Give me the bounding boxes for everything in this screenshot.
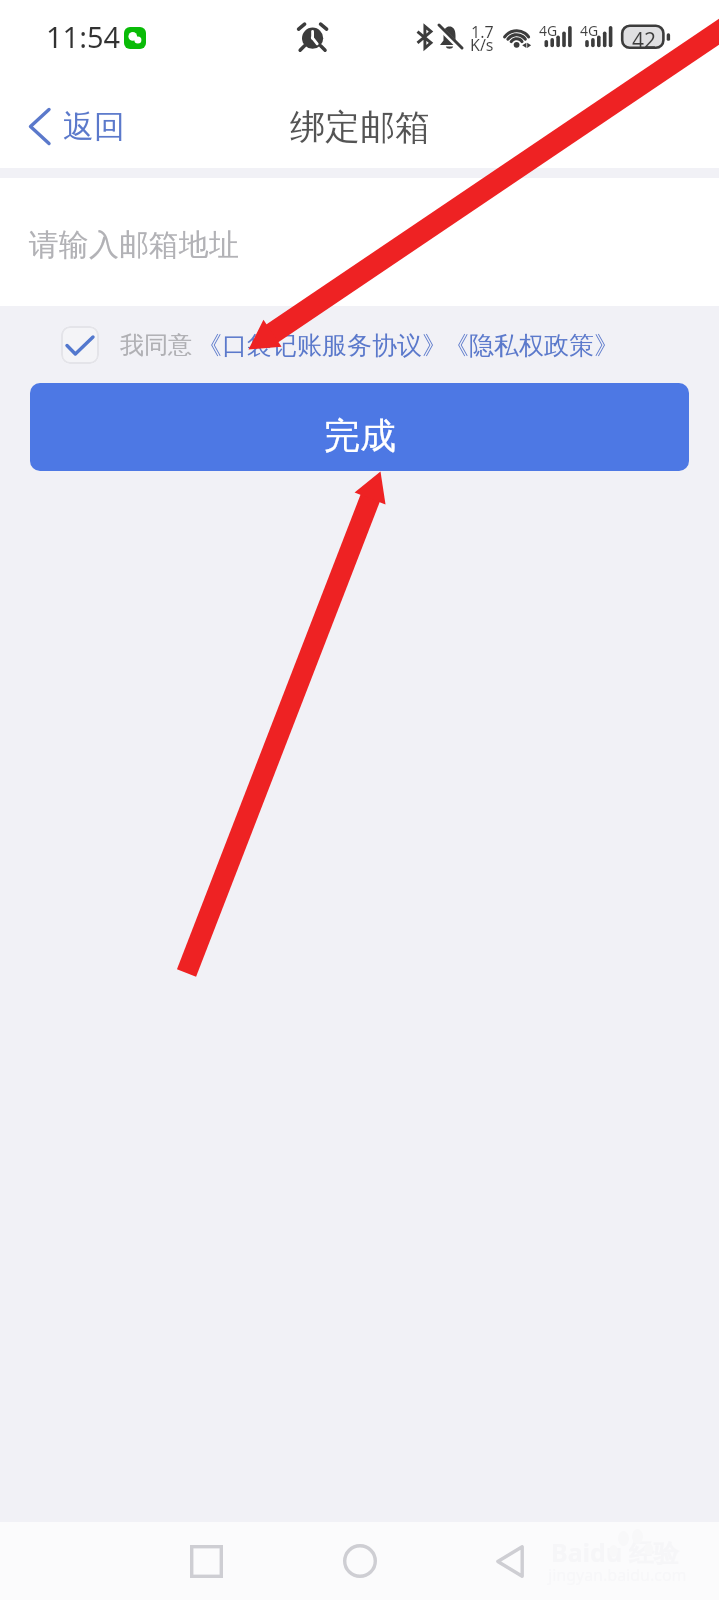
staticText: 1.7	[471, 21, 494, 43]
staticText: 4G	[539, 21, 558, 40]
button[interactable]: 完成	[30, 383, 689, 471]
button[interactable]: 《隐私权政策》	[444, 330, 619, 361]
button[interactable]: 《口袋记账服务协议》	[197, 330, 447, 361]
staticText: 完成	[324, 413, 396, 458]
staticText: 42	[632, 26, 657, 55]
staticText: 返回	[63, 107, 125, 146]
button[interactable]: 返回	[0, 78, 139, 168]
button[interactable]: Recent apps	[166, 1522, 246, 1600]
button[interactable]: Home	[320, 1522, 400, 1600]
button[interactable]: 请输入邮箱地址	[0, 178, 719, 306]
staticText: 请输入邮箱地址	[29, 226, 239, 264]
staticText: 我同意	[120, 330, 192, 360]
staticText: 4G	[580, 21, 599, 40]
staticText: 绑定邮箱	[290, 105, 430, 149]
button[interactable]: Back	[470, 1522, 550, 1600]
staticText: 11:54	[46, 17, 121, 56]
staticText: K/s	[470, 34, 494, 56]
button[interactable]: 同意服务协议	[61, 326, 99, 364]
